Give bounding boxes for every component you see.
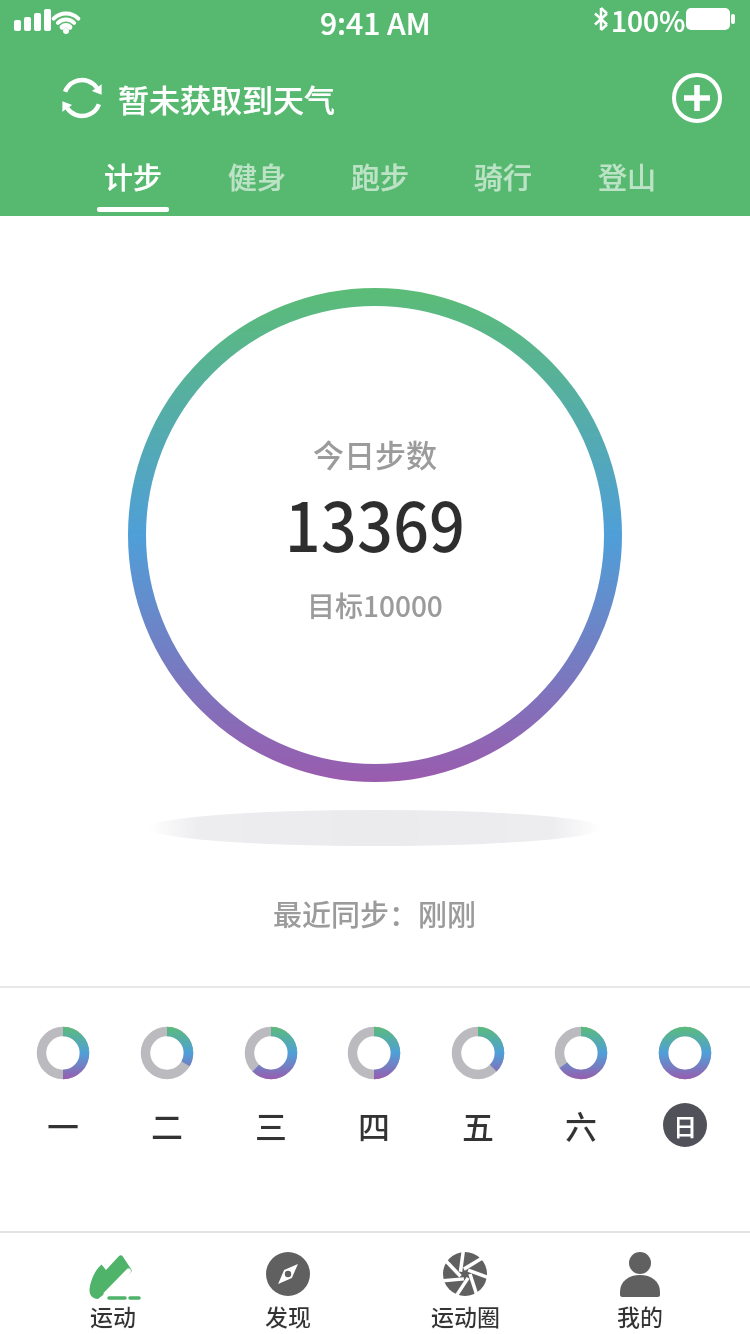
staticText: 最近同步：刚刚: [273, 892, 477, 934]
button[interactable]: 运动: [43, 1240, 183, 1334]
staticText: 运动: [90, 1299, 136, 1332]
staticText: 9:41 AM: [320, 0, 431, 40]
button[interactable]: [244, 1026, 298, 1080]
button[interactable]: 计步: [73, 148, 193, 204]
button[interactable]: 日: [663, 1103, 707, 1147]
button[interactable]: [671, 72, 723, 124]
staticText: 一: [47, 1102, 80, 1148]
staticText: 运动圈: [431, 1299, 500, 1332]
staticText: 六: [565, 1102, 598, 1148]
staticText: 今日步数: [313, 431, 437, 476]
staticText: 四: [358, 1102, 391, 1148]
staticText: 健身: [228, 155, 287, 197]
button[interactable]: [56, 72, 108, 124]
staticText: 日: [673, 1108, 697, 1143]
staticText: 13369: [285, 473, 465, 571]
staticText: 暂未获取到天气: [118, 76, 335, 121]
button[interactable]: 登山: [567, 148, 687, 204]
button[interactable]: 骑行: [443, 148, 563, 204]
staticText: 发现: [265, 1299, 311, 1332]
button[interactable]: [658, 1026, 712, 1080]
button[interactable]: [140, 1026, 194, 1080]
staticText: 五: [462, 1102, 495, 1148]
staticText: 100%: [611, 0, 686, 40]
staticText: 三: [255, 1102, 288, 1148]
staticText: 登山: [598, 155, 657, 197]
button[interactable]: [347, 1026, 401, 1080]
staticText: 骑行: [474, 155, 533, 197]
staticText: 我的: [617, 1299, 663, 1332]
staticText: 计步: [104, 155, 163, 197]
button[interactable]: [36, 1026, 90, 1080]
staticText: 跑步: [351, 155, 410, 197]
button[interactable]: 跑步: [320, 148, 440, 204]
button[interactable]: 发现: [218, 1240, 358, 1334]
button[interactable]: [451, 1026, 505, 1080]
button[interactable]: 健身: [197, 148, 317, 204]
staticText: 二: [151, 1102, 184, 1148]
button[interactable]: 我的: [570, 1240, 710, 1334]
staticText: 目标10000: [307, 585, 443, 626]
button[interactable]: [554, 1026, 608, 1080]
button[interactable]: 运动圈: [395, 1240, 535, 1334]
